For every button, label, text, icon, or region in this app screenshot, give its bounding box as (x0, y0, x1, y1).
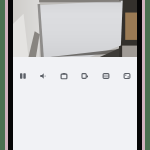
button[interactable]: Markup (116, 73, 137, 85)
button[interactable]: Crop (53, 73, 74, 85)
button[interactable]: Frame (95, 73, 116, 85)
button[interactable]: Cinematic (74, 73, 95, 85)
button[interactable]: Collage (13, 73, 33, 85)
button[interactable]: Sound (33, 73, 53, 85)
